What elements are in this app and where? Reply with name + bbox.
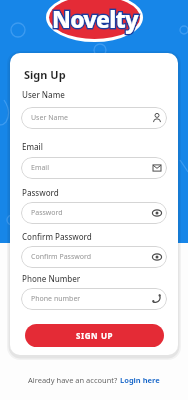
staticText: Novelty bbox=[52, 3, 138, 34]
button[interactable]: Novelty bbox=[46, 0, 143, 42]
staticText: SIGN UP bbox=[76, 330, 114, 341]
staticText: Login here bbox=[120, 375, 160, 385]
staticText: Email bbox=[31, 163, 49, 173]
staticText: User Name bbox=[22, 89, 65, 100]
staticText: Password bbox=[22, 187, 59, 198]
button[interactable]: User Name bbox=[21, 107, 167, 129]
staticText: Phone Number bbox=[22, 273, 81, 284]
button[interactable]: Already have an account? bbox=[28, 375, 160, 385]
staticText: User Name bbox=[31, 113, 68, 123]
staticText: Sign Up bbox=[24, 67, 66, 82]
staticText: Password bbox=[31, 208, 63, 218]
staticText: Email bbox=[22, 141, 43, 152]
button[interactable]: Password bbox=[21, 202, 167, 224]
button[interactable]: Confirm Password bbox=[21, 246, 167, 268]
staticText: Novelty bbox=[52, 3, 138, 34]
button[interactable]: SIGN UP bbox=[25, 324, 164, 347]
staticText: Confirm Password bbox=[22, 231, 92, 242]
staticText: Confirm Password bbox=[31, 252, 92, 262]
staticText: Phone number bbox=[31, 294, 81, 304]
staticText: Already have an account? bbox=[28, 375, 120, 385]
button[interactable]: Email bbox=[21, 157, 167, 179]
button[interactable]: Phone number bbox=[21, 288, 167, 310]
